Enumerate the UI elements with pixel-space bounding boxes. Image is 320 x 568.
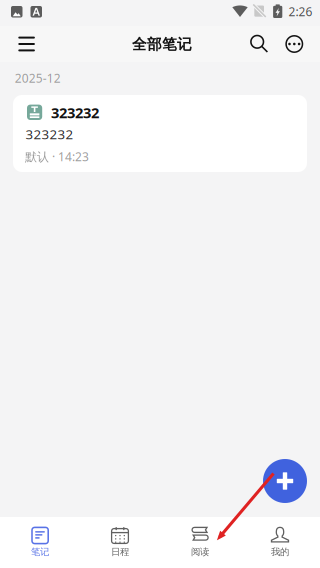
button[interactable]: 323232 [13, 95, 307, 172]
button[interactable]: Menu [9, 26, 45, 62]
staticText: 笔记 [31, 546, 49, 558]
staticText: 323232 [25, 125, 73, 143]
staticText: 日程 [111, 546, 129, 558]
button[interactable]: 日程 [80, 517, 160, 568]
staticText: 我的 [271, 546, 289, 558]
staticText: 323232 [51, 103, 99, 122]
button[interactable]: New note [263, 459, 307, 503]
button[interactable]: 笔记 [0, 517, 80, 568]
staticText: 2025-12 [15, 70, 61, 86]
button[interactable]: Search [241, 26, 277, 62]
staticText: 全部笔记 [132, 35, 192, 53]
button[interactable]: More options [276, 26, 312, 62]
button[interactable]: 阅读 [160, 517, 240, 568]
staticText: 默认 · 14:23 [25, 148, 89, 164]
button[interactable]: 我的 [240, 517, 320, 568]
staticText: 阅读 [191, 546, 209, 558]
staticText: 2:26 [288, 3, 312, 19]
